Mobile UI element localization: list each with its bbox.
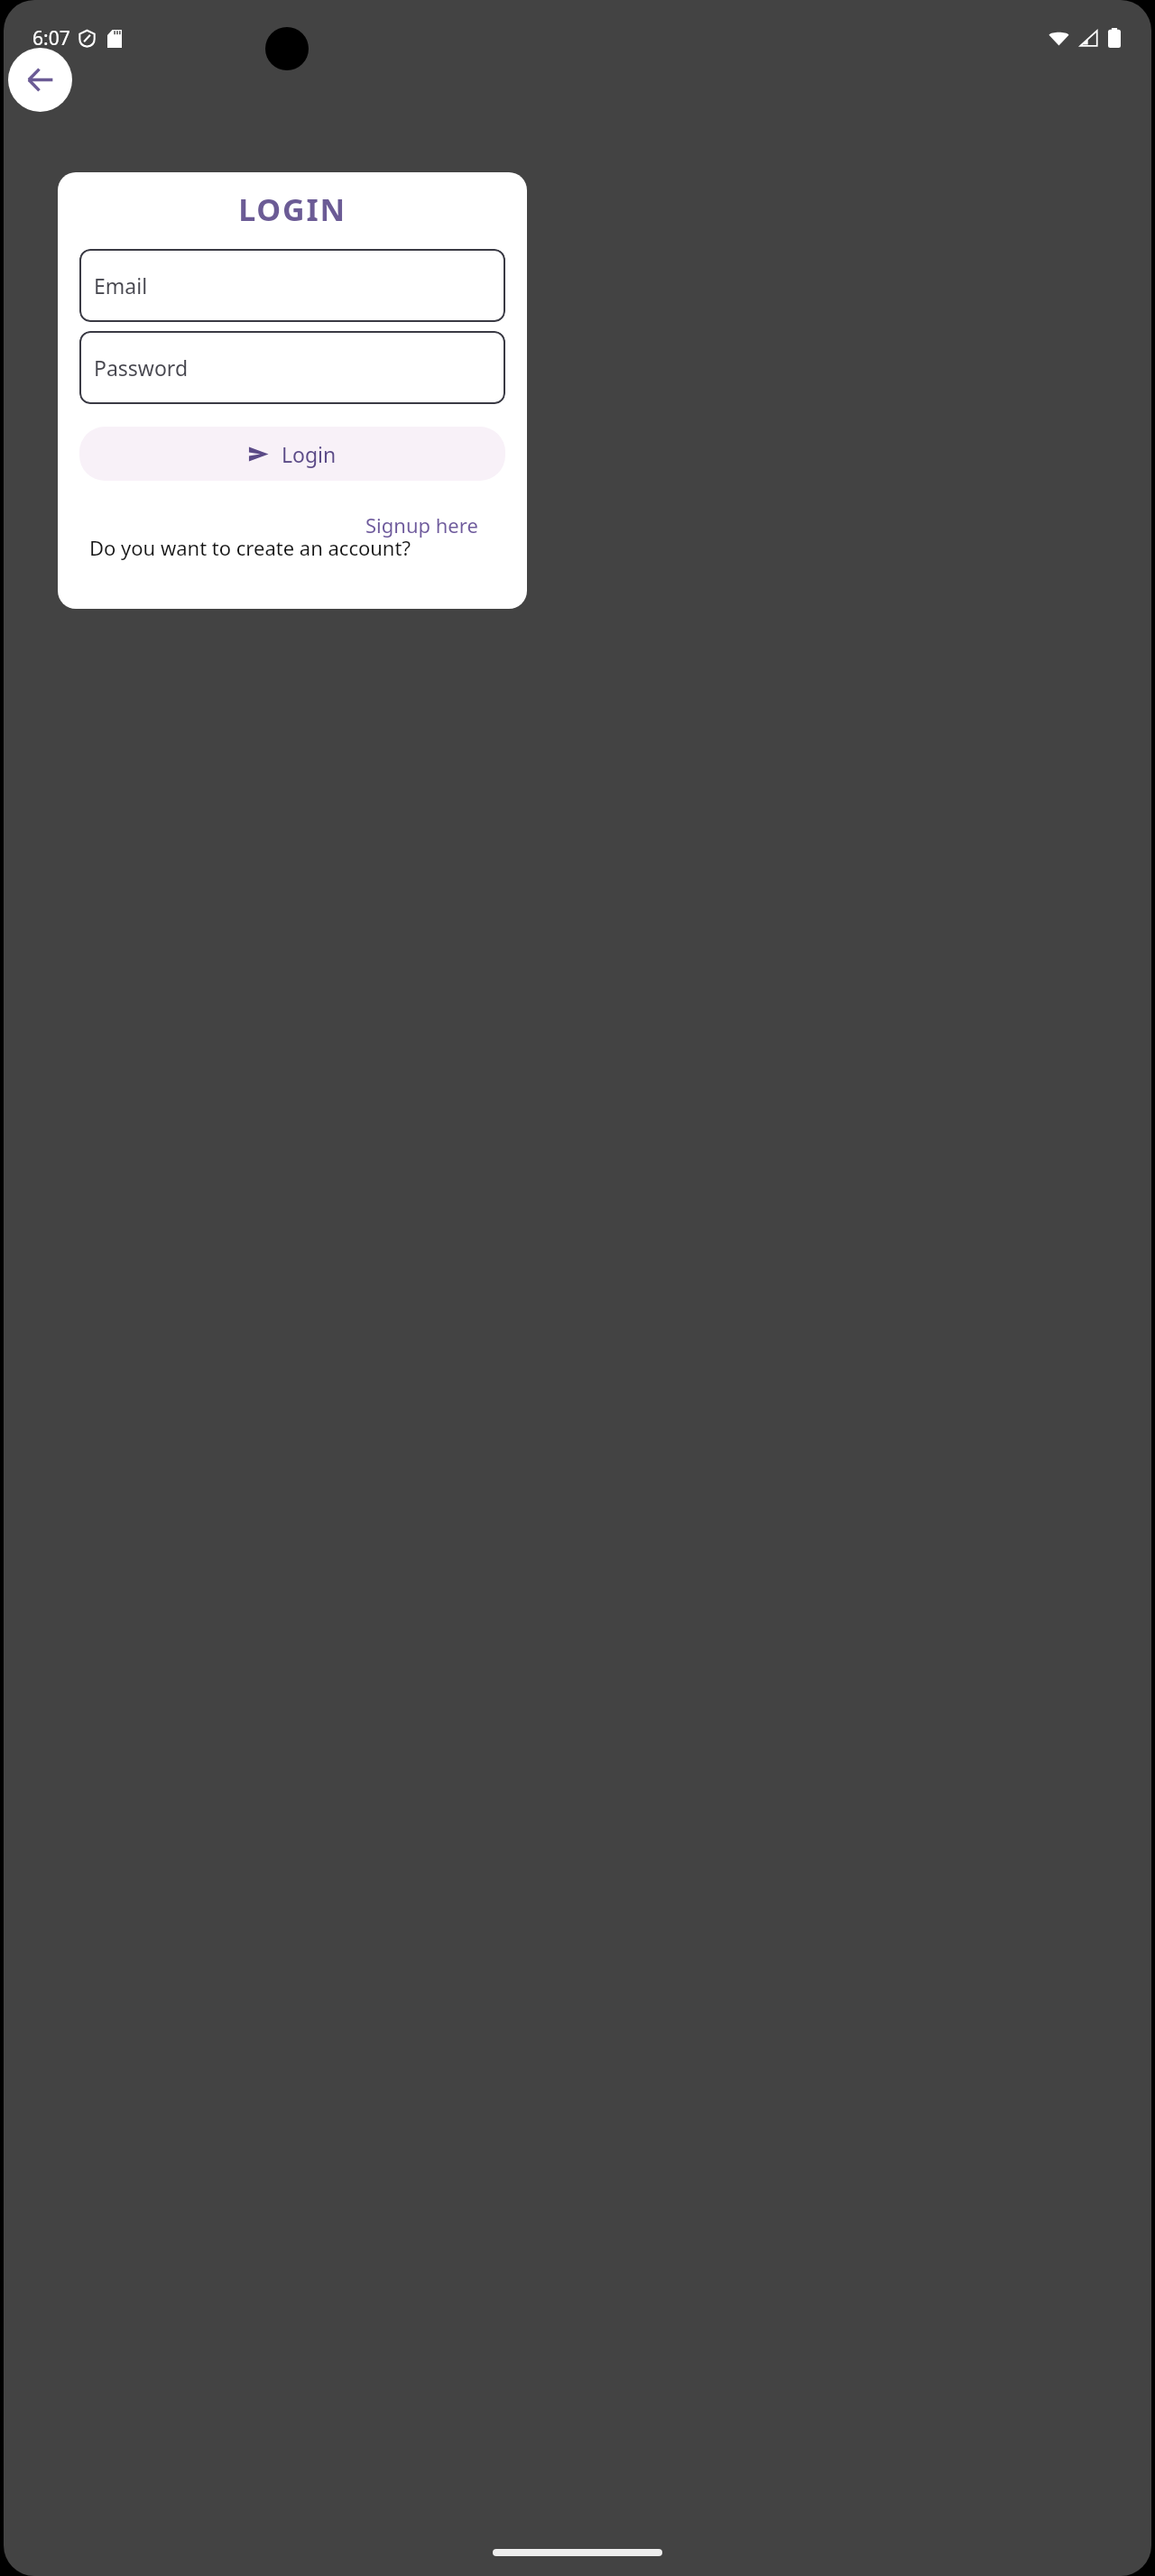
staticText: LOGIN (58, 189, 527, 230)
staticText: Email (94, 271, 148, 299)
staticText: Do you want to create an account? (89, 534, 411, 561)
button[interactable]: Email (79, 249, 505, 322)
staticText: Login (282, 440, 337, 468)
button[interactable]: Login (79, 427, 505, 481)
button[interactable]: Signup here (365, 511, 478, 538)
staticText: 6:07 (32, 25, 70, 51)
button[interactable]: Password (79, 331, 505, 404)
staticText: Password (94, 354, 189, 382)
button[interactable]: Back (8, 48, 72, 112)
